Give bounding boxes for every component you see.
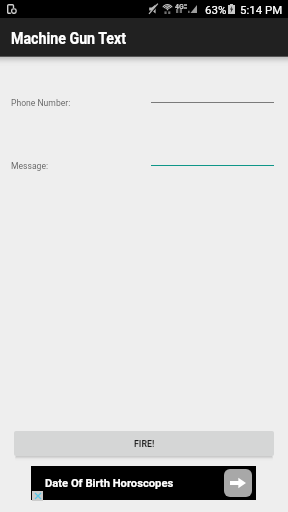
- staticText: 63%: [205, 3, 227, 16]
- button[interactable]: FIRE!: [14, 431, 274, 456]
- button[interactable]: Phone Number:: [151, 85, 274, 103]
- staticText: Machine Gun Text: [11, 29, 126, 48]
- staticText: 4G: [175, 3, 184, 11]
- staticText: Phone Number:: [11, 98, 71, 108]
- button[interactable]: Open advertisement: [224, 469, 252, 497]
- staticText: Date Of Birth Horoscopes: [45, 477, 174, 490]
- staticText: 5:14 PM: [240, 3, 283, 16]
- staticText: FIRE!: [134, 439, 155, 449]
- button[interactable]: Date Of Birth Horoscopes: [31, 466, 256, 500]
- button[interactable]: Message:: [151, 148, 274, 166]
- button[interactable]: Close ad: [32, 491, 43, 501]
- staticText: Message:: [11, 161, 49, 171]
